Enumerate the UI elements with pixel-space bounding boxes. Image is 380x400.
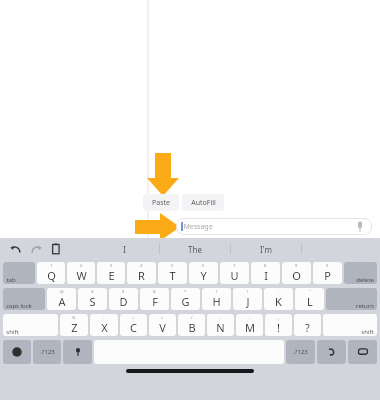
staticText: I xyxy=(264,268,268,283)
staticText: , xyxy=(278,315,280,320)
button[interactable]: & xyxy=(140,288,169,310)
button[interactable]: 7 xyxy=(220,262,249,284)
staticText: 8 xyxy=(264,263,267,268)
staticText: ! xyxy=(277,320,280,335)
staticText: $ xyxy=(122,289,125,294)
button[interactable]: .?123 xyxy=(33,340,61,364)
button[interactable]: Emoji xyxy=(3,340,31,364)
staticText: + xyxy=(132,315,135,320)
button[interactable]: ' xyxy=(264,288,293,310)
button[interactable]: I xyxy=(90,238,159,260)
button[interactable]: 9 xyxy=(282,262,311,284)
button[interactable]: = xyxy=(149,314,176,336)
staticText: I xyxy=(123,244,126,255)
staticText: . xyxy=(307,315,309,320)
staticText: The xyxy=(188,244,202,255)
staticText: E xyxy=(108,268,115,283)
button[interactable]: I'm xyxy=(231,238,301,260)
staticText: AutoFill xyxy=(191,198,216,208)
staticText: 4 xyxy=(140,263,143,268)
button[interactable]: / xyxy=(178,314,205,336)
staticText: D xyxy=(119,294,128,309)
button[interactable]: % xyxy=(60,314,88,336)
button[interactable]: return xyxy=(326,288,377,310)
staticText: .?123 xyxy=(293,348,308,356)
button[interactable]: ) xyxy=(233,288,262,310)
button[interactable]: . xyxy=(294,314,321,336)
button[interactable]: 4 xyxy=(127,262,156,284)
button[interactable]: # xyxy=(78,288,107,310)
button[interactable]: Paste xyxy=(143,194,179,211)
staticText: V xyxy=(159,320,166,335)
button[interactable]: The xyxy=(160,238,230,260)
staticText: Y xyxy=(200,268,207,283)
staticText: ; xyxy=(220,315,222,320)
button[interactable]: $ xyxy=(109,288,138,310)
staticText: ? xyxy=(305,320,310,335)
staticText: H xyxy=(212,294,221,309)
button[interactable]: 1 xyxy=(37,262,65,284)
staticText: W xyxy=(76,268,87,283)
button[interactable]: 6 xyxy=(189,262,218,284)
button[interactable]: + xyxy=(120,314,147,336)
button[interactable]: AutoFill xyxy=(182,194,224,211)
staticText: " xyxy=(309,289,311,294)
button[interactable]: tab xyxy=(3,262,35,284)
staticText: % xyxy=(72,315,76,320)
button[interactable]: 3 xyxy=(97,262,125,284)
staticText: 3 xyxy=(110,263,113,268)
button[interactable]: Hide keyboard xyxy=(348,340,377,364)
button[interactable]: ; xyxy=(207,314,234,336)
staticText: delete xyxy=(356,276,374,284)
button[interactable]: * xyxy=(171,288,200,310)
staticText: 9 xyxy=(295,263,298,268)
button[interactable]: : xyxy=(236,314,263,336)
staticText: .?123 xyxy=(40,348,55,356)
staticText: U xyxy=(230,268,239,283)
button[interactable]: delete xyxy=(344,262,377,284)
staticText: shift xyxy=(6,328,19,336)
staticText: 1 xyxy=(50,263,53,268)
button[interactable]: @ xyxy=(47,288,76,310)
button[interactable]: .?123 xyxy=(286,340,315,364)
staticText: X xyxy=(101,320,108,335)
staticText: ' xyxy=(278,289,279,294)
button[interactable]: 0 xyxy=(313,262,342,284)
button[interactable]: Undo xyxy=(8,241,24,257)
staticText: caps lock xyxy=(6,302,32,310)
staticText: * xyxy=(184,289,187,294)
button[interactable]: ( xyxy=(202,288,231,310)
staticText: K xyxy=(275,294,282,309)
button[interactable]: caps lock xyxy=(3,288,45,310)
button[interactable]: Message xyxy=(176,218,372,235)
staticText: P xyxy=(324,268,331,283)
staticText: 7 xyxy=(233,263,236,268)
staticText: N xyxy=(216,320,225,335)
staticText: ) xyxy=(247,289,249,294)
button[interactable]: shift xyxy=(3,314,58,336)
staticText: @ xyxy=(60,289,64,294)
staticText: - xyxy=(103,315,105,320)
staticText: A xyxy=(58,294,66,309)
button[interactable]: 2 xyxy=(67,262,95,284)
button[interactable]: Paste xyxy=(48,241,64,257)
button[interactable]: " xyxy=(295,288,324,310)
staticText: Q xyxy=(47,268,56,283)
button[interactable]: , xyxy=(265,314,292,336)
button[interactable]: - xyxy=(90,314,118,336)
button[interactable]: 8 xyxy=(251,262,280,284)
staticText: B xyxy=(188,320,196,335)
staticText: J xyxy=(246,294,250,309)
staticText: 0 xyxy=(326,263,329,268)
button[interactable]: Redo xyxy=(28,241,44,257)
button[interactable]: Handwriting xyxy=(317,340,346,364)
staticText: S xyxy=(89,294,96,309)
button[interactable]: 5 xyxy=(158,262,187,284)
staticText: : xyxy=(249,315,251,320)
staticText: # xyxy=(91,289,94,294)
staticText: Z xyxy=(71,320,78,335)
staticText: F xyxy=(152,294,158,309)
button[interactable]: shift xyxy=(323,314,377,336)
button[interactable]: Voice input xyxy=(63,340,92,364)
